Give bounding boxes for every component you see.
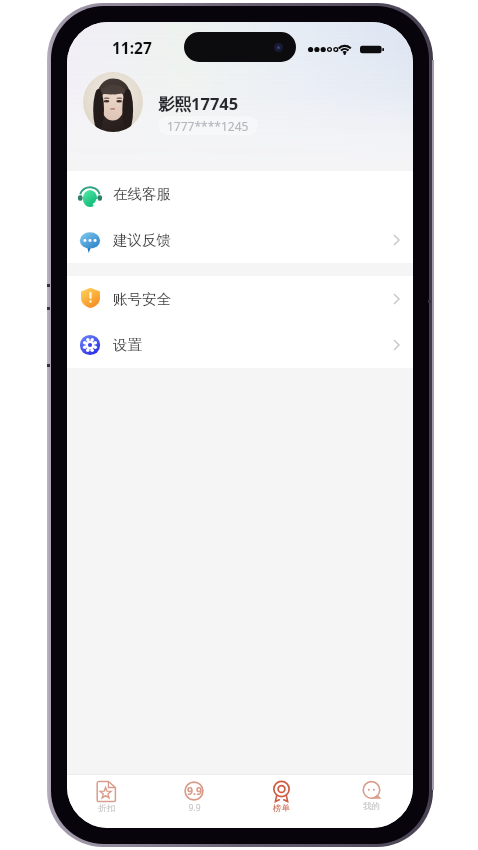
button[interactable]: 建议反馈 <box>67 217 413 263</box>
staticText: 11:27 <box>112 37 152 58</box>
staticText: 我的 <box>363 801 380 812</box>
staticText: 9.9 <box>188 802 201 814</box>
staticText: 设置 <box>113 336 142 354</box>
staticText: 影熙17745 <box>158 92 239 115</box>
button[interactable]: 我的 <box>326 775 413 828</box>
button[interactable]: 榜单 <box>239 775 326 828</box>
button[interactable]: 账号安全 <box>67 276 413 322</box>
staticText: 建议反馈 <box>113 231 171 249</box>
button[interactable]: 9.9 <box>153 775 239 828</box>
button[interactable]: 设置 <box>67 322 413 368</box>
staticText: 账号安全 <box>113 290 171 308</box>
staticText: 在线客服 <box>113 185 171 203</box>
button[interactable]: 折扣 <box>67 775 153 828</box>
button[interactable]: 在线客服 <box>67 171 413 217</box>
staticText: 折扣 <box>98 803 115 814</box>
staticText: 榜单 <box>273 803 290 814</box>
staticText: 1777****1245 <box>167 118 249 134</box>
staticText: 9.9 <box>187 784 202 798</box>
